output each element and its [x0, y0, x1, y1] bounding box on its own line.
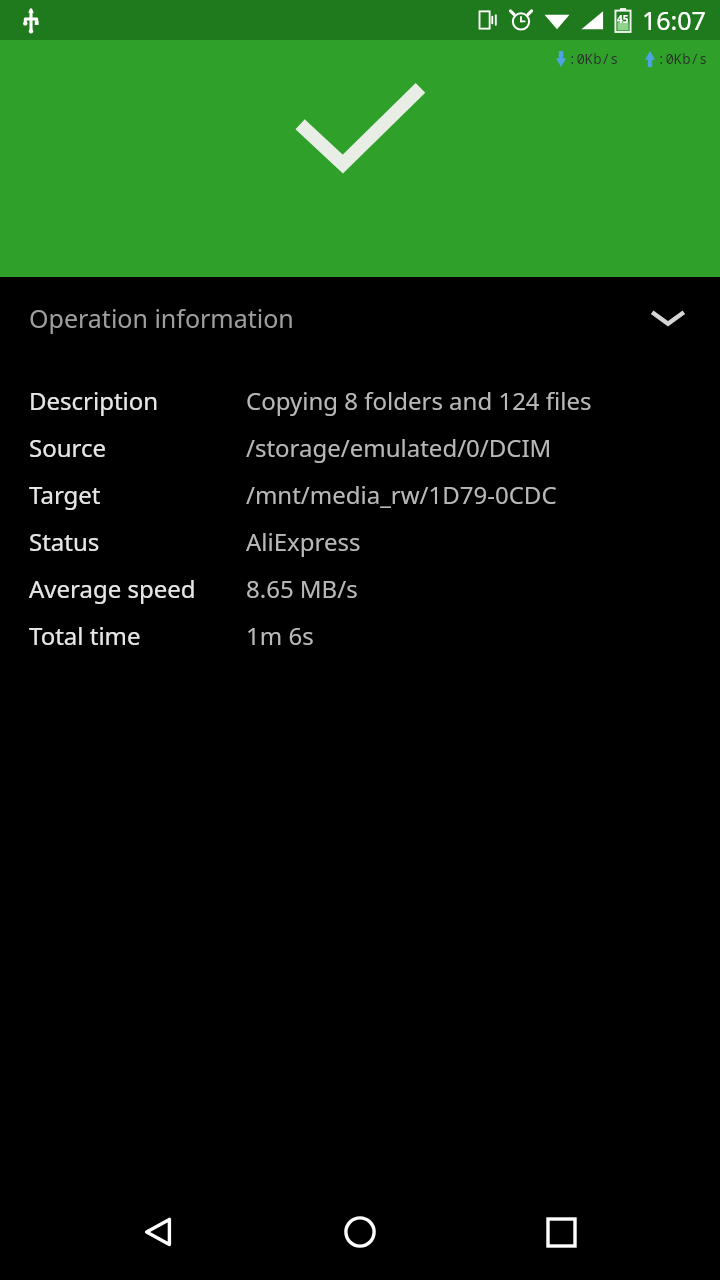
button[interactable]: Description	[0, 377, 720, 424]
button[interactable]: Operation information	[0, 277, 720, 359]
staticText: Operation information	[29, 301, 294, 335]
button[interactable]: Collapse operation information	[646, 296, 690, 340]
button[interactable]: Status	[0, 518, 720, 565]
staticText: Total time	[29, 619, 141, 652]
button[interactable]: Back	[118, 1192, 198, 1272]
staticText: 45	[617, 12, 629, 26]
staticText: /storage/emulated/0/DCIM	[246, 431, 552, 464]
staticText: :0Kb/s	[657, 49, 708, 68]
staticText: Source	[29, 431, 107, 464]
staticText: Average speed	[29, 572, 196, 605]
button[interactable]: Total time	[0, 612, 720, 659]
button[interactable]: Source	[0, 424, 720, 471]
staticText: 8.65 MB/s	[246, 572, 358, 605]
staticText: Copying 8 folders and 124 files	[246, 384, 592, 417]
staticText: Status	[29, 525, 100, 558]
button[interactable]: Average speed	[0, 565, 720, 612]
staticText: AliExpress	[246, 525, 361, 558]
staticText: 1m 6s	[246, 619, 314, 652]
staticText: Description	[29, 384, 159, 417]
staticText: 16:07	[642, 3, 706, 37]
button[interactable]: Target	[0, 471, 720, 518]
staticText: /mnt/media_rw/1D79-0CDC	[246, 478, 557, 511]
staticText: :0Kb/s	[568, 49, 619, 68]
button[interactable]: Home	[320, 1192, 400, 1272]
button[interactable]: Recent apps	[521, 1192, 601, 1272]
staticText: Target	[29, 478, 101, 511]
